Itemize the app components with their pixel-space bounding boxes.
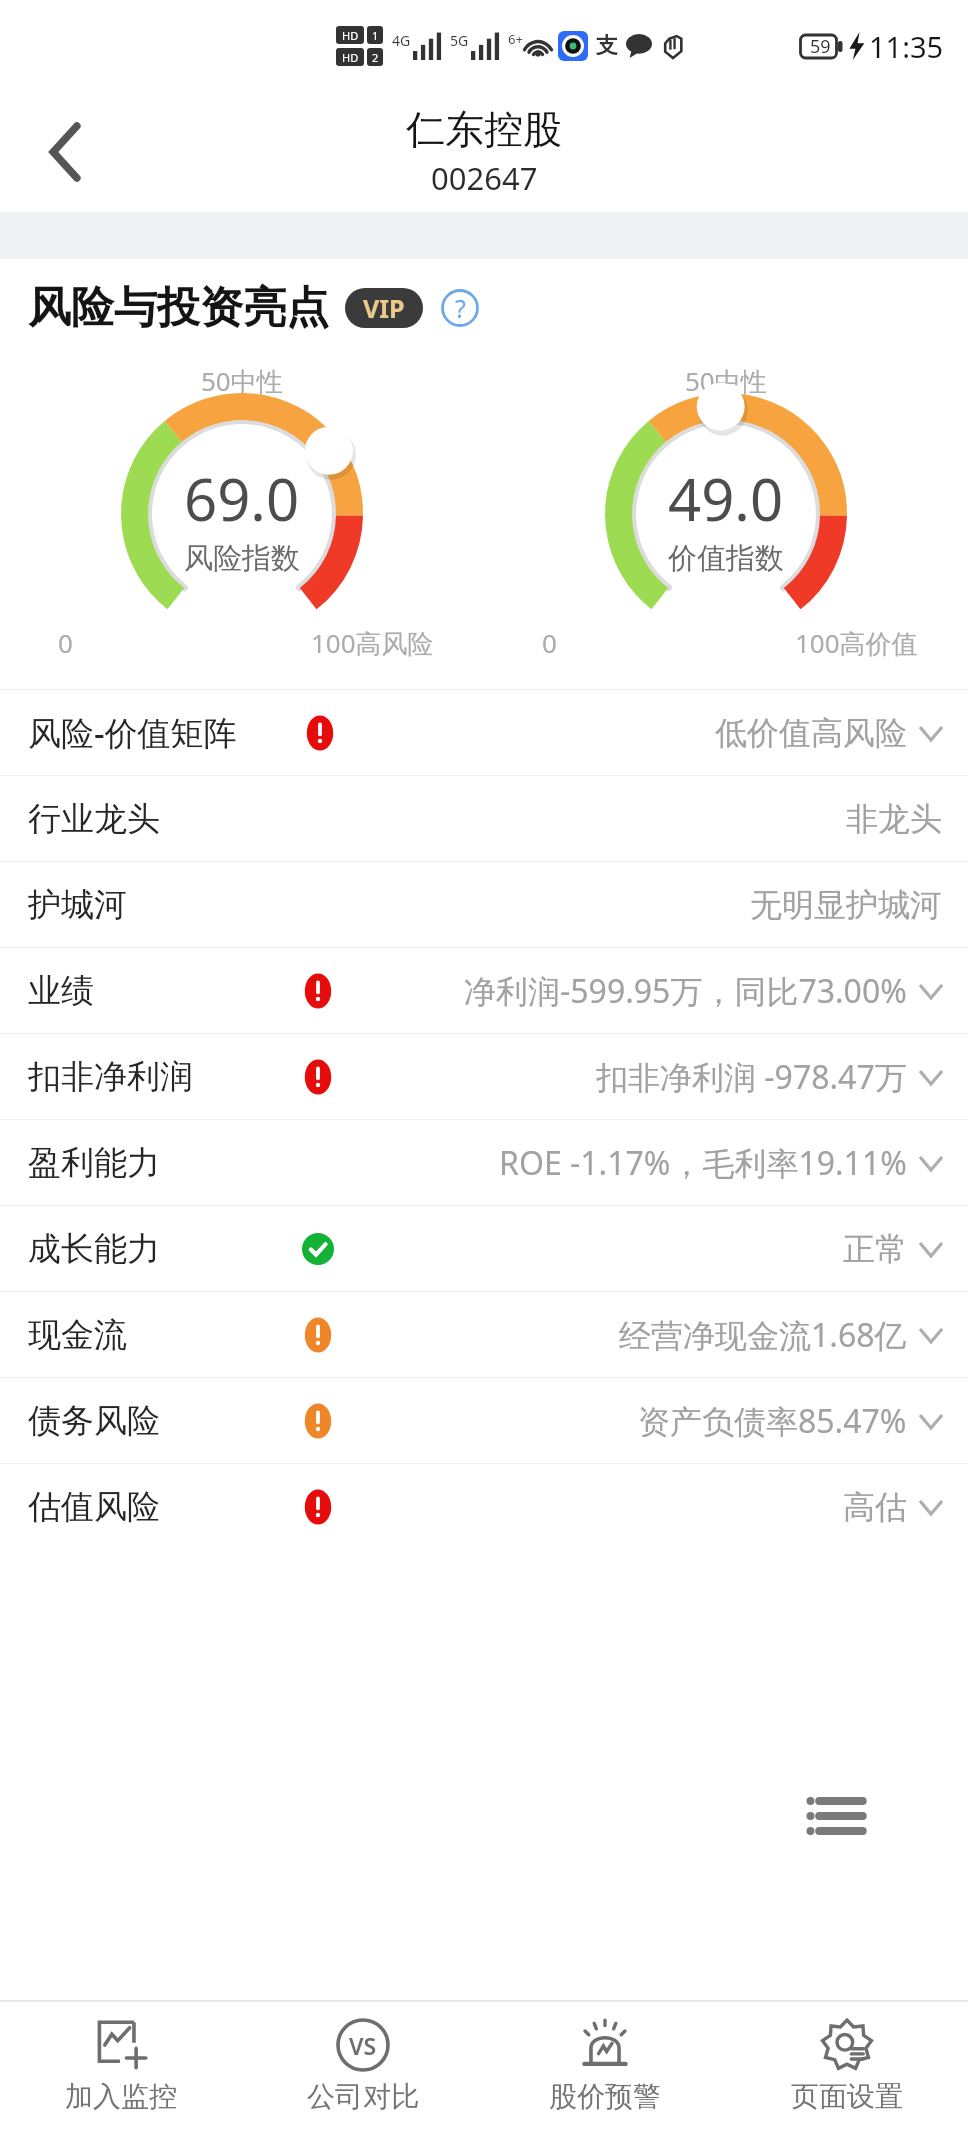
staticText: 成长能力 [28, 1228, 160, 1270]
staticText: 11:35 [869, 27, 944, 66]
staticText: 2 [372, 50, 379, 65]
staticText: 100高价值 [795, 625, 918, 661]
staticText: 002647 [431, 157, 538, 199]
staticText: 扣非净利润 [28, 1056, 193, 1098]
staticText: 100高风险 [311, 625, 434, 661]
staticText: 0 [542, 625, 557, 660]
staticText: 风险与投资亮点 [28, 281, 329, 335]
staticText: 盈利能力 [28, 1142, 160, 1184]
staticText: 低价值高风险 [715, 713, 907, 753]
staticText: ROE -1.17%，毛利率19.11% [499, 1141, 907, 1185]
staticText: 经营净现金流1.68亿 [619, 1313, 907, 1357]
staticText: 非龙头 [846, 799, 942, 839]
staticText: 净利润-599.95万，同比73.00% [464, 969, 907, 1013]
button[interactable]: 行业龙头 [0, 776, 968, 861]
staticText: 59 [810, 34, 831, 59]
staticText: 49.0 [668, 459, 784, 538]
button[interactable]: VS [242, 2002, 484, 2130]
staticText: 资产负债率85.47% [638, 1399, 907, 1443]
staticText: 加入监控 [65, 2079, 177, 2114]
staticText: 高估 [843, 1487, 907, 1527]
staticText: 50中性 [685, 363, 767, 399]
staticText: 股价预警 [549, 2079, 661, 2114]
staticText: 风险-价值矩阵 [28, 710, 237, 755]
staticText: VIP [363, 291, 405, 325]
staticText: 行业龙头 [28, 798, 160, 840]
button[interactable]: 现金流 [0, 1292, 968, 1377]
staticText: 公司对比 [307, 2079, 419, 2114]
staticText: 支 [596, 32, 618, 60]
staticText: 价值指数 [668, 540, 784, 577]
staticText: 估值风险 [28, 1486, 160, 1528]
staticText: 无明显护城河 [750, 885, 942, 925]
button[interactable]: VIP [345, 288, 423, 328]
button[interactable]: 成长能力 [0, 1206, 968, 1291]
button[interactable]: 估值风险 [0, 1464, 968, 1549]
staticText: 50中性 [201, 363, 283, 399]
staticText: 5G [450, 31, 469, 50]
button[interactable]: 加入监控 [0, 2002, 242, 2130]
staticText: 69.0 [184, 459, 300, 538]
staticText: 风险指数 [184, 540, 300, 577]
staticText: 债务风险 [28, 1400, 160, 1442]
staticText: HD [342, 28, 359, 43]
button[interactable]: 盈利能力 [0, 1120, 968, 1205]
staticText: 0 [58, 625, 73, 660]
staticText: 4G [392, 31, 411, 50]
button[interactable]: 债务风险 [0, 1378, 968, 1463]
button[interactable]: 护城河 [0, 862, 968, 947]
button[interactable]: 风险-价值矩阵 [0, 690, 968, 775]
staticText: 业绩 [28, 970, 94, 1012]
staticText: 仁东控股 [406, 105, 562, 154]
staticText: HD [342, 50, 359, 65]
button[interactable]: 扣非净利润 [0, 1034, 968, 1119]
staticText: 6+ [508, 30, 523, 48]
staticText: ? [455, 291, 466, 325]
staticText: VS [349, 2030, 377, 2061]
button[interactable]: Menu [776, 1758, 896, 1874]
button[interactable]: Help [438, 286, 482, 330]
staticText: 1 [372, 28, 379, 43]
staticText: 现金流 [28, 1314, 127, 1356]
button[interactable]: 页面设置 [726, 2002, 968, 2130]
staticText: 护城河 [28, 884, 127, 926]
button[interactable]: Back [22, 108, 110, 196]
staticText: 页面设置 [791, 2079, 903, 2114]
staticText: 正常 [843, 1229, 907, 1269]
staticText: 扣非净利润 -978.47万 [596, 1055, 907, 1099]
button[interactable]: 业绩 [0, 948, 968, 1033]
button[interactable]: 股价预警 [484, 2002, 726, 2130]
